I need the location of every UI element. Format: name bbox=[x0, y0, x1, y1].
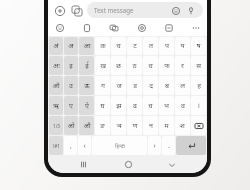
button[interactable]: › bbox=[148, 136, 161, 155]
staticText: ऑ bbox=[52, 81, 60, 91]
button[interactable]: 1/3 bbox=[49, 116, 63, 135]
button[interactable]: फ bbox=[159, 56, 174, 75]
staticText: ख bbox=[100, 61, 106, 71]
button[interactable]: क bbox=[95, 37, 110, 55]
staticText: अं bbox=[53, 41, 59, 51]
button[interactable]: ब bbox=[159, 76, 174, 95]
button[interactable]: ह bbox=[191, 76, 206, 95]
button[interactable]: Clipboard bbox=[80, 21, 93, 34]
button[interactable]: Emoji bbox=[170, 5, 181, 16]
staticText: हिन्दी bbox=[115, 142, 125, 149]
button[interactable]: Hide keyboard bbox=[162, 156, 182, 173]
button[interactable]: ध bbox=[143, 96, 158, 115]
button[interactable]: ठ bbox=[127, 56, 142, 75]
button[interactable]: अः bbox=[49, 56, 63, 75]
staticText: थ bbox=[148, 61, 153, 71]
staticText: प bbox=[165, 41, 169, 51]
button[interactable]: ञ bbox=[111, 116, 126, 135]
button[interactable]: च bbox=[111, 37, 126, 55]
button[interactable]: उ bbox=[64, 76, 78, 95]
staticText: ऊ bbox=[84, 81, 90, 91]
button[interactable]: हिन्दी bbox=[92, 136, 147, 155]
staticText: ठ bbox=[132, 61, 137, 71]
button[interactable]: आ bbox=[79, 37, 94, 55]
button[interactable]: Voice input bbox=[185, 5, 196, 16]
button[interactable]: व bbox=[175, 96, 190, 115]
button[interactable]: ङ bbox=[95, 116, 110, 135]
button[interactable]: ओ bbox=[64, 116, 78, 135]
staticText: ई bbox=[85, 61, 89, 71]
staticText: ध bbox=[148, 101, 153, 111]
button[interactable]: , bbox=[64, 136, 77, 155]
button[interactable]: त bbox=[143, 37, 158, 55]
button[interactable]: इ bbox=[64, 56, 78, 75]
button[interactable]: Enter bbox=[176, 136, 206, 155]
button[interactable]: द bbox=[143, 76, 158, 95]
button[interactable]: ख bbox=[95, 56, 110, 75]
button[interactable]: Stickers bbox=[69, 3, 84, 18]
staticText: ग bbox=[101, 81, 105, 91]
button[interactable]: Settings bbox=[135, 21, 148, 34]
button[interactable]: ग bbox=[95, 76, 110, 95]
button[interactable]: Translate bbox=[107, 21, 120, 34]
staticText: अः bbox=[53, 61, 60, 71]
button[interactable]: अं bbox=[49, 37, 63, 55]
button[interactable]: ऊ bbox=[79, 76, 94, 95]
staticText: ट bbox=[133, 41, 137, 51]
staticText: आ bbox=[83, 41, 91, 51]
staticText: ऋ bbox=[53, 101, 59, 111]
button[interactable]: ऐ bbox=[79, 96, 94, 115]
button[interactable]: ढ bbox=[127, 96, 142, 115]
button[interactable]: . bbox=[162, 136, 175, 155]
button[interactable]: !#1 bbox=[49, 136, 63, 155]
button[interactable]: Add attachment bbox=[52, 3, 67, 18]
button[interactable]: ऑ bbox=[49, 76, 63, 95]
staticText: ण bbox=[132, 121, 138, 131]
button[interactable]: अ bbox=[64, 37, 78, 55]
button[interactable]: ड bbox=[127, 76, 142, 95]
staticText: फ bbox=[164, 61, 170, 71]
button[interactable]: र bbox=[175, 56, 190, 75]
staticText: ‹ bbox=[83, 141, 86, 151]
button[interactable]: म bbox=[159, 116, 174, 135]
button[interactable]: ट bbox=[127, 37, 142, 55]
button[interactable]: घ bbox=[95, 96, 110, 115]
button[interactable]: ज bbox=[111, 76, 126, 95]
button[interactable]: य bbox=[175, 37, 190, 55]
button[interactable]: Text message bbox=[87, 2, 203, 18]
button[interactable]: भ bbox=[159, 96, 174, 115]
staticText: च bbox=[116, 41, 121, 51]
staticText: त bbox=[149, 41, 153, 51]
button[interactable]: Home bbox=[118, 156, 138, 173]
button[interactable]: ल bbox=[175, 76, 190, 95]
button[interactable]: न bbox=[143, 116, 158, 135]
button[interactable]: ण bbox=[127, 116, 142, 135]
staticText: 1/3 bbox=[53, 123, 60, 129]
button[interactable]: औ bbox=[79, 116, 94, 135]
staticText: ज bbox=[116, 81, 122, 91]
staticText: ब bbox=[165, 81, 169, 91]
staticText: न bbox=[149, 121, 153, 131]
button[interactable]: ए bbox=[64, 96, 78, 115]
staticText: ढ bbox=[133, 101, 137, 111]
button[interactable]: Backspace bbox=[191, 116, 206, 135]
button[interactable]: ऋ bbox=[49, 96, 63, 115]
button[interactable]: । bbox=[191, 96, 206, 115]
button[interactable]: प bbox=[159, 37, 174, 55]
button[interactable]: छ bbox=[111, 56, 126, 75]
button[interactable]: Emoji keyboard bbox=[53, 21, 66, 34]
button[interactable]: थ bbox=[143, 56, 158, 75]
staticText: !#1 bbox=[53, 143, 60, 149]
staticText: ए bbox=[69, 101, 73, 111]
button[interactable]: झ bbox=[111, 96, 126, 115]
button[interactable]: स bbox=[191, 56, 206, 75]
button[interactable]: Resize keyboard bbox=[162, 21, 175, 34]
button[interactable]: More options bbox=[189, 21, 202, 34]
button[interactable]: श bbox=[175, 116, 190, 135]
button[interactable]: Recents bbox=[73, 156, 93, 173]
button[interactable]: ई bbox=[79, 56, 94, 75]
staticText: झ bbox=[116, 101, 122, 111]
button[interactable]: ष bbox=[191, 37, 206, 55]
button[interactable]: ‹ bbox=[78, 136, 91, 155]
staticText: ञ bbox=[116, 121, 122, 131]
